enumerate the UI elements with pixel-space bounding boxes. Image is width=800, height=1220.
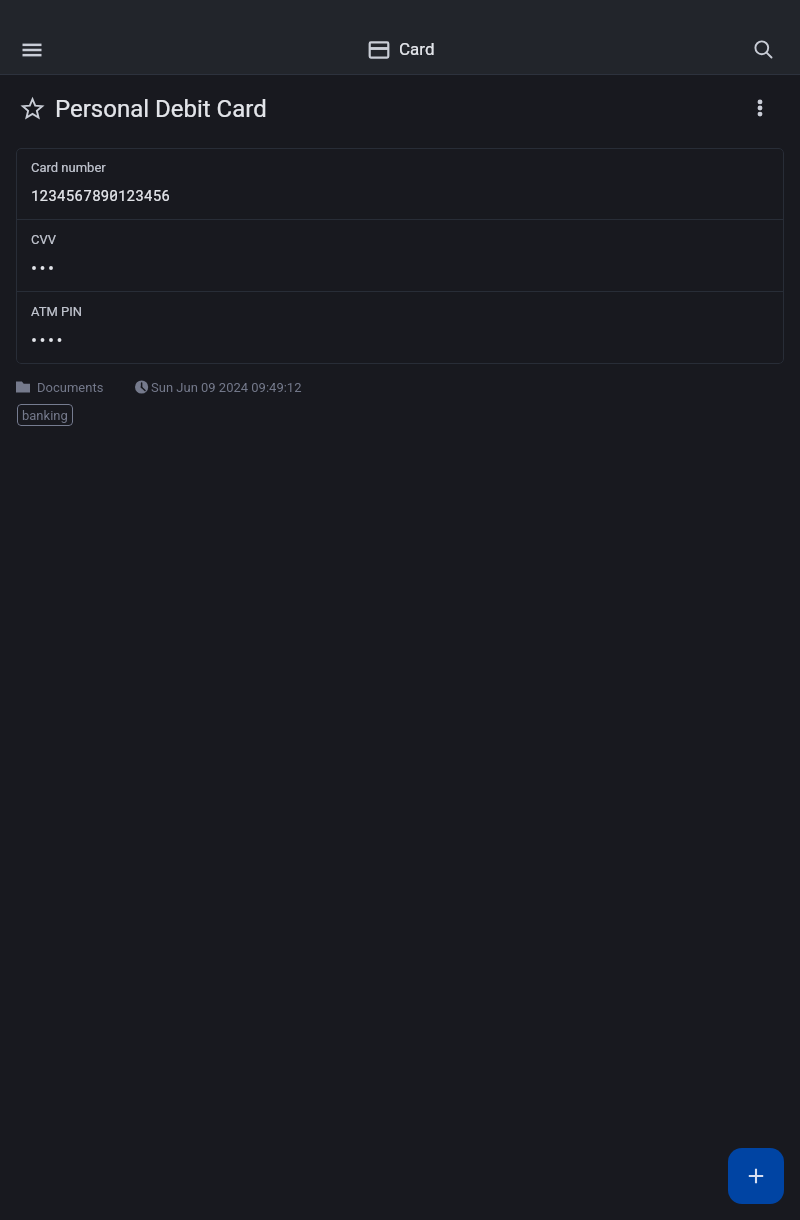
- button[interactable]: Card number: [16, 148, 784, 219]
- button[interactable]: Add to favourites: [8, 85, 56, 133]
- staticText: Documents: [37, 380, 104, 395]
- button[interactable]: More options: [736, 84, 784, 132]
- staticText: Personal Debit Card: [55, 95, 267, 123]
- staticText: ATM PIN: [31, 304, 83, 319]
- button[interactable]: Add entry: [728, 1148, 784, 1204]
- staticText: Card: [399, 39, 435, 59]
- button[interactable]: CVV: [16, 220, 784, 291]
- button[interactable]: ATM PIN: [16, 292, 784, 364]
- staticText: CVV: [31, 232, 57, 247]
- button[interactable]: Open navigation menu: [8, 26, 56, 74]
- staticText: Card number: [31, 160, 106, 175]
- button[interactable]: Search: [740, 26, 788, 74]
- staticText: 1234567890123456: [31, 186, 171, 205]
- staticText: Sun Jun 09 2024 09:49:12: [151, 380, 302, 395]
- button[interactable]: banking: [17, 404, 73, 426]
- staticText: banking: [22, 408, 68, 423]
